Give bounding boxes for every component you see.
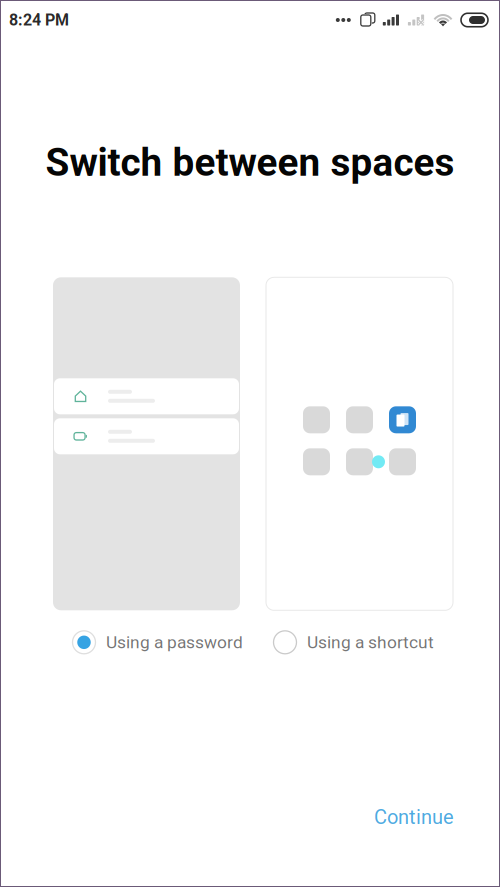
staticText: Continue bbox=[374, 806, 454, 829]
staticText: Using a password bbox=[106, 632, 243, 652]
staticText: Switch between spaces bbox=[45, 140, 454, 185]
staticText: 8:24 PM bbox=[9, 11, 69, 29]
button[interactable]: Switch with a password bbox=[53, 277, 240, 610]
button[interactable]: Using a shortcut bbox=[273, 630, 434, 654]
button[interactable]: Switch with a shortcut bbox=[266, 277, 453, 610]
button[interactable]: Continue bbox=[374, 806, 454, 829]
button[interactable]: Using a password bbox=[72, 630, 243, 654]
staticText: Using a shortcut bbox=[307, 632, 434, 652]
